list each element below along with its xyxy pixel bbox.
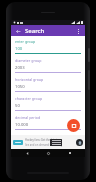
staticText: 2003 [15,65,25,71]
other: Advertiser [76,139,83,146]
button[interactable]: Home [42,149,54,157]
staticText: 100 [15,46,23,52]
button[interactable]: Back [21,149,33,157]
button[interactable]: Back [14,27,22,35]
button[interactable]: enter group [15,38,81,54]
staticText: 1050 [15,84,25,90]
button[interactable]: diameter group [15,57,81,73]
staticText: character group [15,96,43,101]
staticText: live and on demand streaming [25,143,63,147]
staticText: 10.000 [15,122,29,128]
button[interactable]: horizontal group [15,76,81,92]
button[interactable]: decimal period [15,114,81,130]
button[interactable]: Hockey fans: Get the latest scores [11,135,85,149]
staticText: Hockey fans: Get the latest scores [25,138,64,142]
staticText: diameter group [15,58,42,63]
staticText: 50 [15,103,20,109]
staticText: horizontal group [15,77,44,82]
button[interactable]: Recent apps [64,149,76,157]
button[interactable]: character group [15,95,81,111]
button[interactable]: More options [74,27,82,35]
staticText: enter group [15,39,36,44]
staticText: decimal period [15,115,41,120]
staticText: Search [25,27,45,35]
button[interactable]: Add [67,119,80,132]
